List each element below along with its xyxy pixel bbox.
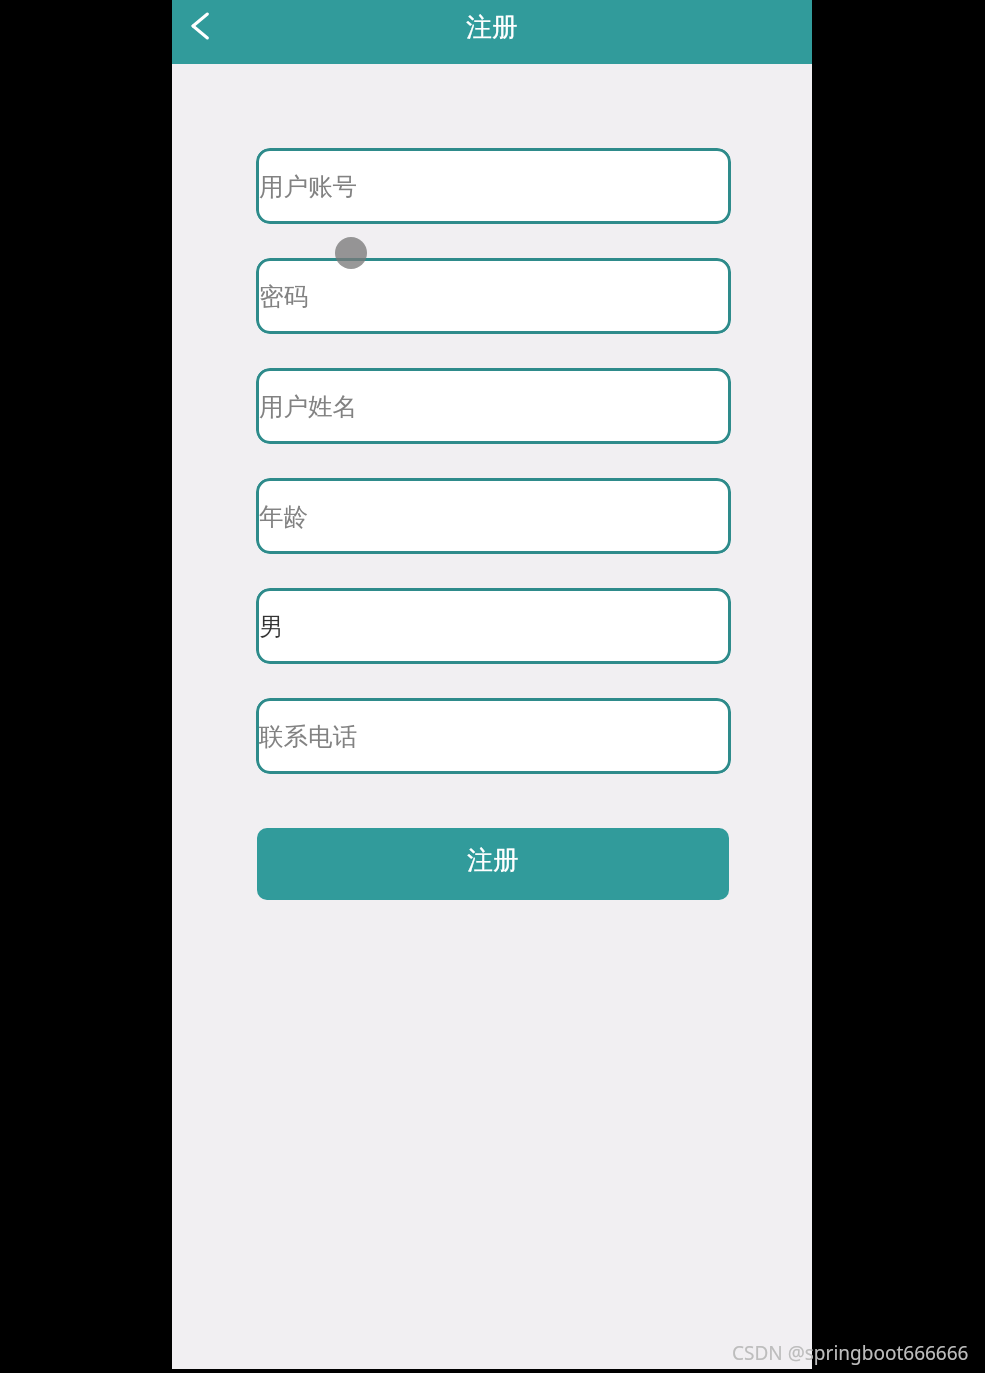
- staticText: 用户账号: [259, 171, 357, 202]
- button[interactable]: Back: [178, 0, 232, 53]
- button[interactable]: 年龄: [256, 478, 731, 554]
- button[interactable]: 联系电话: [256, 698, 731, 774]
- button[interactable]: 注册: [257, 828, 729, 900]
- staticText: 男: [259, 611, 284, 642]
- button[interactable]: 密码: [256, 258, 731, 334]
- button[interactable]: 用户账号: [256, 148, 731, 224]
- button[interactable]: 男: [256, 588, 731, 664]
- staticText: 用户姓名: [259, 391, 357, 422]
- staticText: 密码: [259, 281, 308, 312]
- staticText: CSDN @springboot666666: [732, 1340, 969, 1366]
- staticText: 年龄: [259, 501, 308, 532]
- staticText: 联系电话: [259, 721, 357, 752]
- staticText: 注册: [467, 844, 519, 877]
- button[interactable]: 用户姓名: [256, 368, 731, 444]
- staticText: 注册: [466, 11, 518, 44]
